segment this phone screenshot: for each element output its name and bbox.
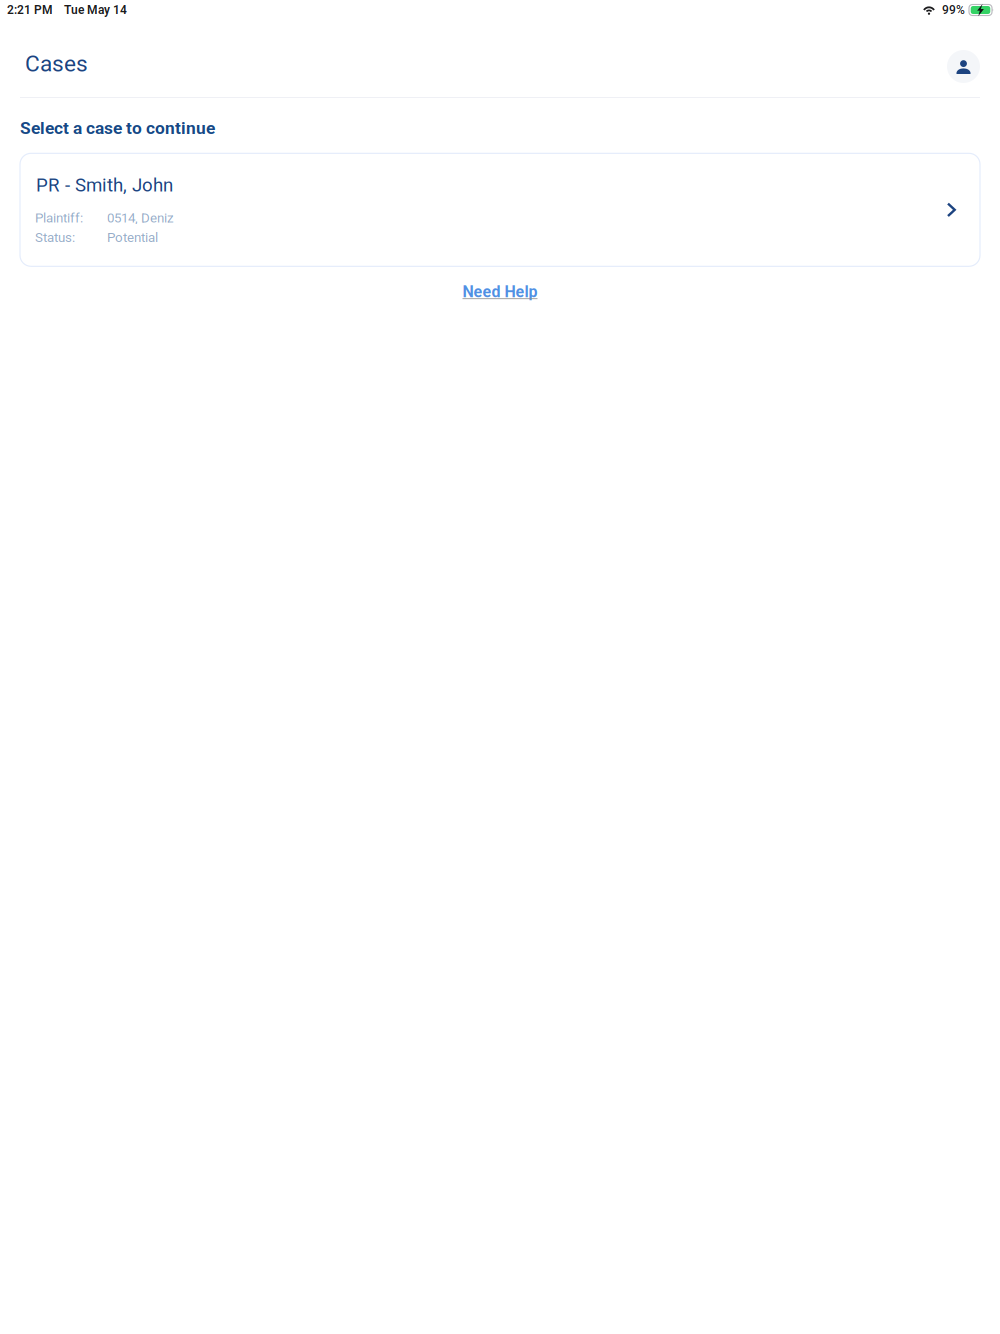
staticText: Cases (25, 50, 88, 77)
button[interactable]: Need Help (450, 276, 549, 307)
staticText: PR - Smith, John (36, 174, 173, 196)
staticText: Tue May 14 (64, 3, 127, 17)
staticText: Potential (107, 230, 158, 245)
staticText: Status: (35, 230, 75, 245)
staticText: 0514, Deniz (107, 210, 174, 226)
staticText: 2:21 PM (7, 3, 53, 17)
button[interactable]: PR - Smith, John (20, 153, 980, 266)
button[interactable]: Account (947, 47, 980, 83)
staticText: Need Help (462, 282, 537, 301)
staticText: Select a case to continue (20, 118, 215, 138)
staticText: Plaintiff: (35, 210, 83, 226)
staticText: 99% (942, 3, 965, 17)
